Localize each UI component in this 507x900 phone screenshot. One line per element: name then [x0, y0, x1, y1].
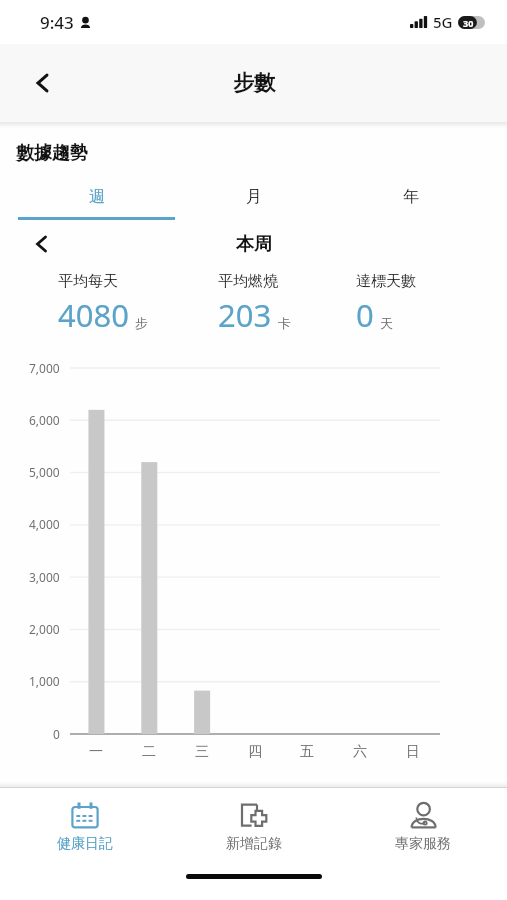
button[interactable]: 年 — [332, 177, 489, 217]
staticText: 步 — [135, 315, 148, 331]
button[interactable]: Back — [22, 62, 64, 104]
staticText: 3,000 — [29, 569, 60, 585]
staticText: 健康日記 — [57, 835, 113, 853]
staticText: 9:43 — [40, 11, 74, 34]
staticText: 4,000 — [29, 516, 60, 532]
staticText: 月 — [246, 187, 262, 207]
button[interactable]: 新增記錄 — [169, 788, 338, 868]
staticText: 一 — [89, 743, 103, 761]
button[interactable]: 週 — [18, 177, 175, 217]
button[interactable]: Previous week — [22, 224, 62, 264]
staticText: 6,000 — [29, 412, 60, 428]
staticText: 0 — [356, 294, 374, 336]
staticText: 六 — [353, 743, 367, 761]
staticText: 數據趨勢 — [16, 142, 88, 165]
button[interactable]: 健康日記 — [0, 788, 169, 868]
staticText: 年 — [403, 187, 419, 207]
staticText: 平均每天 — [58, 272, 118, 291]
staticText: 平均燃燒 — [218, 272, 278, 291]
staticText: 步數 — [233, 70, 275, 96]
staticText: 4080 — [58, 294, 129, 336]
staticText: 週 — [89, 187, 105, 207]
staticText: 日 — [406, 743, 420, 761]
staticText: 203 — [218, 294, 272, 336]
staticText: 5G — [433, 12, 453, 32]
staticText: 2,000 — [29, 621, 60, 637]
button[interactable]: 專家服務 — [338, 788, 507, 868]
staticText: 30 — [463, 17, 474, 29]
staticText: 達標天數 — [356, 272, 416, 291]
staticText: 天 — [380, 315, 393, 331]
staticText: 五 — [300, 743, 314, 761]
staticText: 三 — [195, 743, 209, 761]
staticText: 四 — [248, 743, 262, 761]
staticText: 二 — [142, 743, 156, 761]
button[interactable]: 月 — [175, 177, 332, 217]
staticText: 專家服務 — [395, 835, 451, 853]
staticText: 1,000 — [29, 673, 60, 689]
staticText: 7,000 — [29, 360, 60, 376]
staticText: 新增記錄 — [226, 835, 282, 853]
staticText: 本周 — [236, 233, 272, 256]
staticText: 0 — [53, 726, 60, 742]
staticText: 5,000 — [29, 464, 60, 480]
staticText: 卡 — [278, 315, 291, 331]
